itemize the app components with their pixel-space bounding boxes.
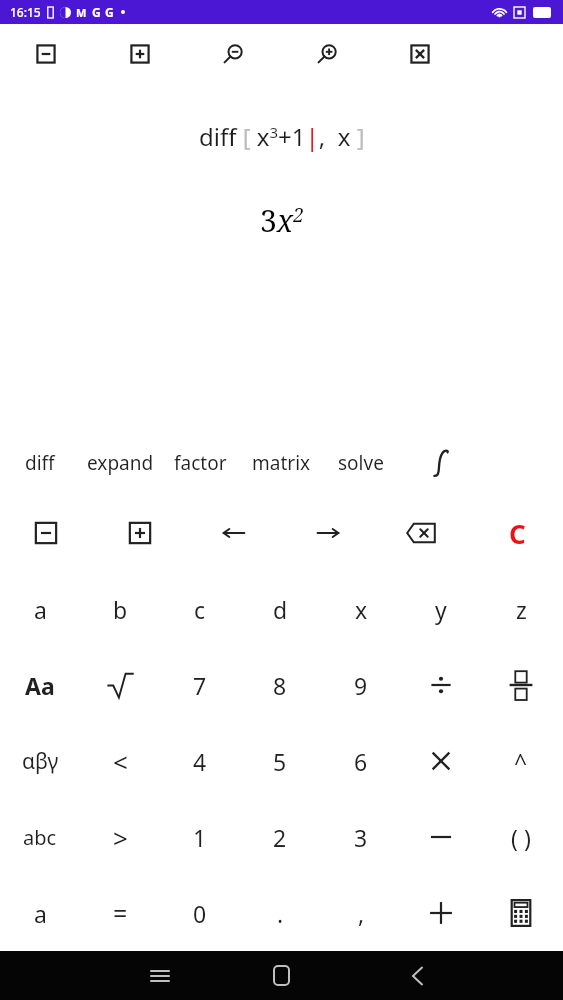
button[interactable]: 4 [162,723,238,799]
staticText: 0 [193,898,207,929]
button[interactable]: Recents [120,951,200,1000]
staticText: 3x2 [260,200,304,241]
staticText: 2 [273,822,287,853]
button[interactable]: diff [2,430,78,495]
button[interactable]: z [483,571,559,647]
button[interactable]: Left [196,495,272,571]
button[interactable]: solve [320,430,402,495]
button[interactable]: b [82,571,158,647]
button[interactable]: ( ) [483,799,559,875]
button[interactable]: 8 [242,647,318,723]
staticText: a [34,898,47,929]
staticText: diff [ x3+1|, x ] [199,120,365,153]
button[interactable]: Home [241,951,321,1000]
button[interactable]: expand [74,430,166,495]
staticText: ^ [514,746,528,777]
button[interactable]: 5 [242,723,318,799]
button[interactable]: Plus [403,875,479,951]
staticText: . [277,898,284,929]
button[interactable]: x [323,571,399,647]
staticText: > [113,820,128,855]
staticText: 1 [193,822,207,853]
button[interactable]: Divide [403,647,479,723]
button[interactable]: 1 [162,799,238,875]
button[interactable]: Back [377,951,457,1000]
staticText: ( ) [511,822,531,853]
button[interactable]: matrix [238,430,324,495]
staticText: C [509,516,526,551]
staticText: 4 [193,746,207,777]
button[interactable]: Grow [102,495,178,571]
staticText: matrix [252,450,311,476]
button[interactable]: > [82,799,158,875]
staticText: 9 [354,670,368,701]
button[interactable]: Minus [403,799,479,875]
button[interactable]: 6 [323,723,399,799]
button[interactable]: Aa [2,647,78,723]
button[interactable]: c [162,571,238,647]
staticText: y [435,594,447,625]
staticText: 6 [354,746,368,777]
button[interactable]: d [242,571,318,647]
button[interactable]: Shrink [8,495,84,571]
staticText: αβγ [22,747,59,776]
button[interactable]: Right [290,495,366,571]
staticText: expand [87,450,154,476]
button[interactable]: Square root [82,647,158,723]
staticText: 16:15 [10,4,41,20]
staticText: z [516,594,527,625]
staticText: diff [25,450,55,476]
button[interactable]: αβγ [2,723,78,799]
staticText: abc [23,824,57,851]
staticText: 8 [273,670,287,701]
button[interactable]: < [82,723,158,799]
button[interactable]: Fraction [483,647,559,723]
staticText: 3 [354,822,368,853]
button[interactable]: abc [2,799,78,875]
button[interactable]: Backspace [383,495,459,571]
staticText: solve [338,450,384,476]
staticText: G [105,4,114,20]
staticText: c [194,594,206,625]
button[interactable]: Collapse [24,32,68,76]
button[interactable]: 0 [162,875,238,951]
button[interactable]: Expand [118,32,162,76]
button[interactable]: factor [157,430,243,495]
staticText: a [34,594,47,625]
button[interactable]: Calculator [483,875,559,951]
button[interactable]: . [242,875,318,951]
button[interactable]: 7 [162,647,238,723]
staticText: d [273,594,288,625]
button[interactable]: a [2,875,78,951]
button[interactable]: = [82,875,158,951]
staticText: G [92,4,101,20]
staticText: = [113,896,128,930]
button[interactable]: Close [398,32,442,76]
staticText: < [113,744,128,779]
staticText: Aa [25,670,55,701]
button[interactable]: 3 [323,799,399,875]
button[interactable]: Zoom out [212,32,256,76]
staticText: , [358,898,365,929]
button[interactable]: C [479,495,555,571]
staticText: factor [174,450,227,476]
button[interactable]: , [323,875,399,951]
button[interactable]: ^ [483,723,559,799]
button[interactable]: 9 [323,647,399,723]
button[interactable]: Zoom in [306,32,350,76]
button[interactable]: 2 [242,799,318,875]
staticText: 7 [193,670,207,701]
button[interactable]: Multiply [403,723,479,799]
staticText: b [113,594,128,625]
staticText: M [76,5,87,20]
staticText: x [355,594,368,625]
button[interactable]: Integral [403,430,479,495]
button[interactable]: y [403,571,479,647]
staticText: 5 [273,746,287,777]
button[interactable]: a [2,571,78,647]
